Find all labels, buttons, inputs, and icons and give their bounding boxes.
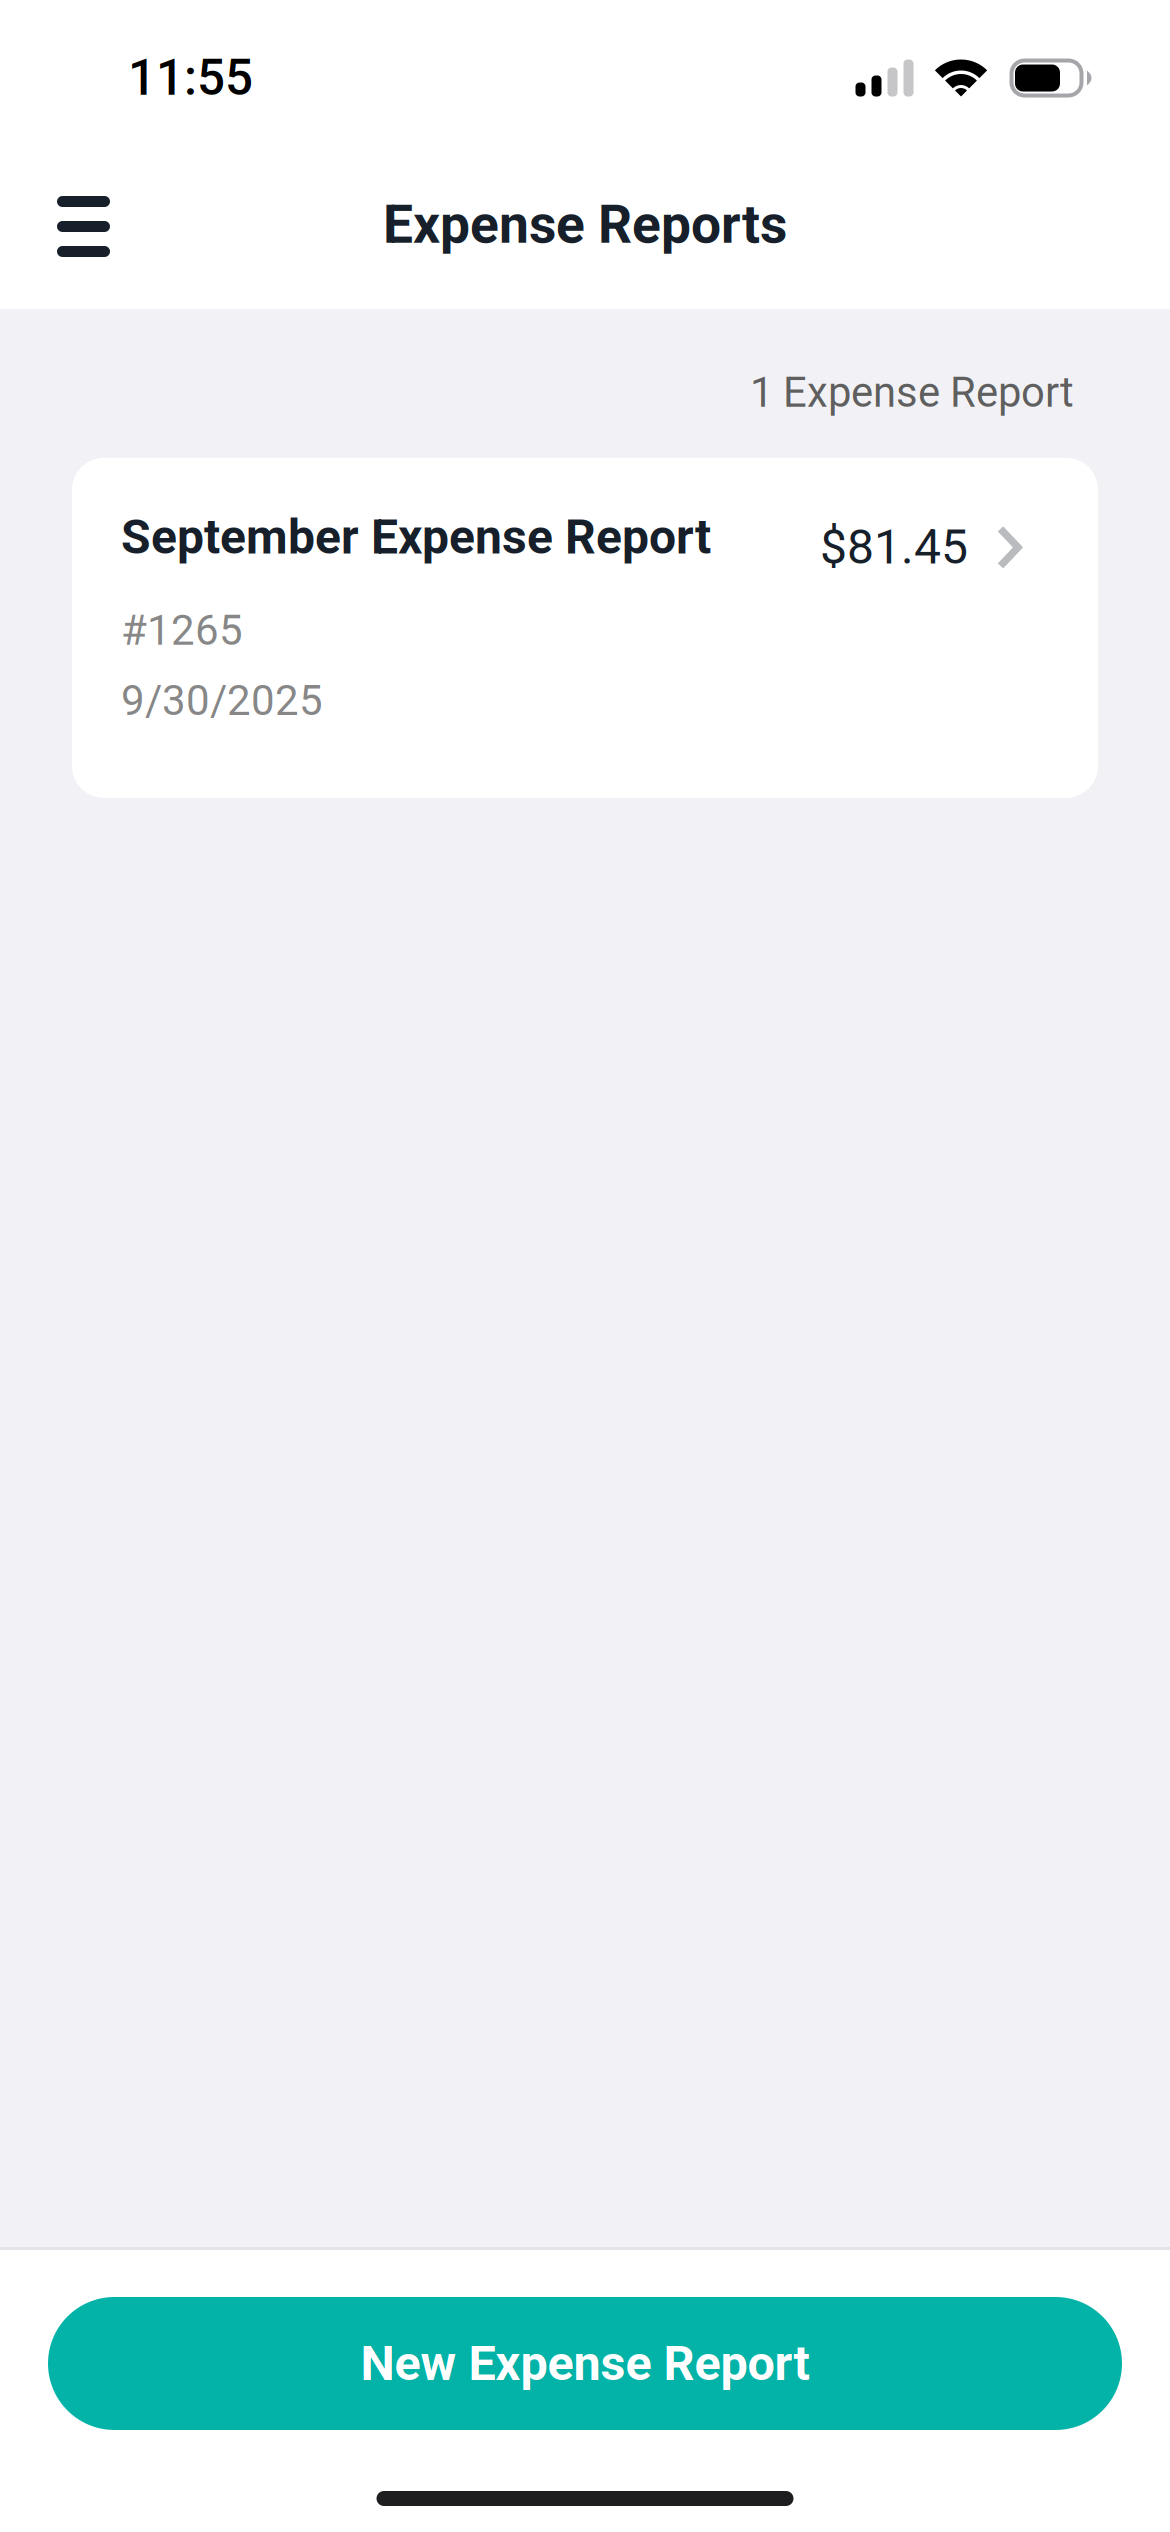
staticText: Expense Reports (383, 193, 787, 256)
staticText: $81.45 (820, 519, 968, 575)
button[interactable]: Menu (0, 174, 140, 279)
staticText: 11:55 (128, 49, 253, 107)
button[interactable]: New Expense Report (48, 2297, 1122, 2430)
staticText: 1 Expense Report (750, 368, 1074, 417)
staticText: New Expense Report (360, 2335, 809, 2392)
button[interactable]: September Expense Report (72, 458, 1098, 798)
staticText: September Expense Report (121, 509, 711, 565)
staticText: 9/30/2025 (121, 676, 323, 725)
staticText: #1265 (121, 606, 243, 655)
